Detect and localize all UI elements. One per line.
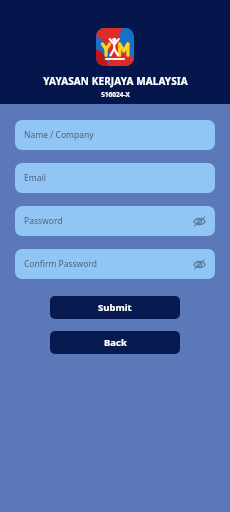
staticText: Submit <box>98 301 132 314</box>
staticText: Back <box>104 336 127 349</box>
staticText: Confirm Password <box>24 258 97 270</box>
button[interactable]: Email <box>15 163 215 193</box>
button[interactable]: Confirm Password <box>15 249 215 279</box>
staticText: Name / Company <box>24 129 94 141</box>
staticText: Password <box>24 215 63 227</box>
button[interactable]: Name / Company <box>15 120 215 150</box>
staticText: 516024-X <box>101 90 130 99</box>
button[interactable]: Show password <box>191 213 207 229</box>
staticText: YAYASAN KERJAYA MALAYSIA <box>43 74 188 88</box>
button[interactable]: Submit <box>50 296 180 319</box>
button[interactable]: Show password <box>191 256 207 272</box>
button[interactable]: Password <box>15 206 215 236</box>
button[interactable]: Back <box>50 331 180 354</box>
staticText: Email <box>24 172 46 184</box>
